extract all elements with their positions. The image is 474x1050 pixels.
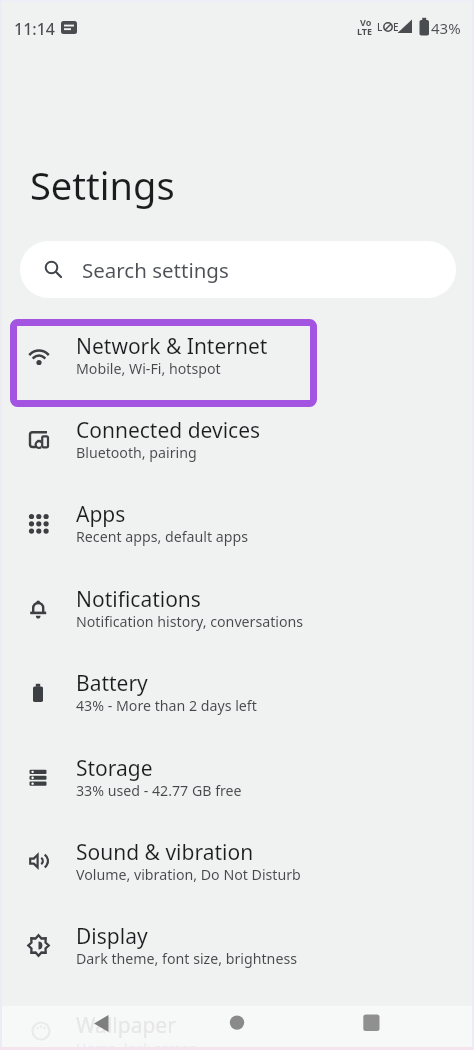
- staticText: Search settings: [82, 256, 229, 284]
- button[interactable]: Wallpaper: [0, 990, 474, 1050]
- button[interactable]: Battery: [0, 655, 474, 739]
- staticText: 11:14: [14, 18, 55, 40]
- button[interactable]: Apps: [0, 486, 474, 570]
- staticText: 33% used - 42.77 GB free: [76, 781, 242, 800]
- button[interactable]: Sound & vibration: [0, 824, 474, 908]
- button[interactable]: [219, 1009, 255, 1043]
- staticText: Vo: [360, 16, 372, 28]
- staticText: Settings: [30, 159, 175, 211]
- staticText: Display: [76, 922, 148, 951]
- staticText: Bluetooth, pairing: [76, 443, 197, 462]
- staticText: Dark theme, font size, brightness: [76, 949, 297, 968]
- button[interactable]: Connected devices: [0, 402, 474, 486]
- staticText: Connected devices: [76, 416, 261, 445]
- button[interactable]: [354, 1009, 390, 1043]
- staticText: E: [393, 20, 399, 34]
- staticText: 43% - More than 2 days left: [76, 696, 257, 715]
- staticText: Storage: [76, 754, 153, 783]
- staticText: 43%: [431, 18, 461, 38]
- staticText: Notifications: [76, 585, 201, 614]
- button[interactable]: [84, 1009, 120, 1043]
- button[interactable]: Display: [0, 908, 474, 992]
- staticText: Apps: [76, 500, 126, 529]
- button[interactable]: Search settings: [20, 241, 456, 298]
- staticText: Recent apps, default apps: [76, 527, 248, 546]
- staticText: LTE: [357, 25, 373, 37]
- staticText: Wallpaper: [76, 1011, 176, 1040]
- staticText: Sound & vibration: [76, 838, 254, 867]
- staticText: Mobile, Wi-Fi, hotspot: [76, 359, 221, 378]
- button[interactable]: Notifications: [0, 571, 474, 655]
- staticText: Network & Internet: [76, 332, 268, 361]
- button[interactable]: Network & Internet: [0, 318, 474, 402]
- staticText: L: [377, 20, 383, 34]
- button[interactable]: Storage: [0, 740, 474, 824]
- staticText: Volume, vibration, Do Not Disturb: [76, 865, 301, 884]
- staticText: Notification history, conversations: [76, 612, 304, 631]
- staticText: Home, lock screen: [76, 1039, 199, 1050]
- staticText: Battery: [76, 669, 148, 698]
